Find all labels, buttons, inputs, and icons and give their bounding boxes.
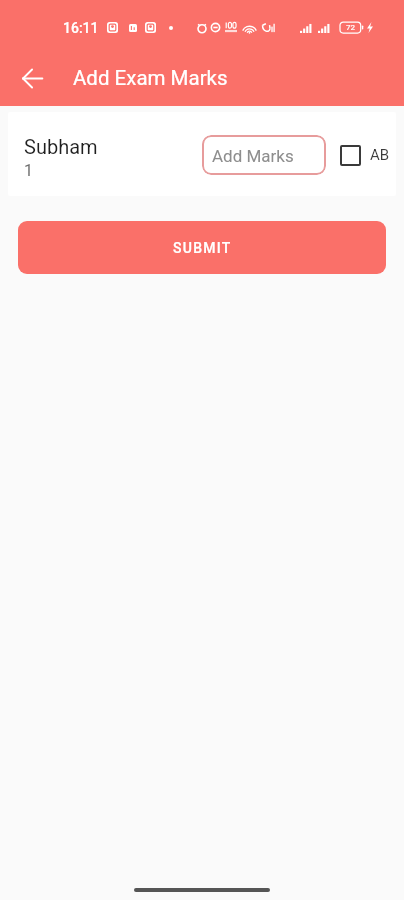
- staticText: Add Exam Marks: [73, 66, 228, 90]
- staticText: Add Marks: [212, 146, 294, 166]
- button[interactable]: Back: [0, 50, 64, 106]
- staticText: 72: [346, 23, 355, 32]
- staticText: AB: [370, 146, 390, 164]
- staticText: Subham: [24, 135, 98, 158]
- staticText: 1: [24, 161, 33, 180]
- button[interactable]: Add Marks: [202, 135, 326, 175]
- button[interactable]: Absent checkbox: [340, 142, 361, 168]
- staticText: 16:11: [63, 20, 99, 36]
- staticText: SUBMIT: [173, 240, 232, 256]
- button[interactable]: SUBMIT: [18, 221, 386, 274]
